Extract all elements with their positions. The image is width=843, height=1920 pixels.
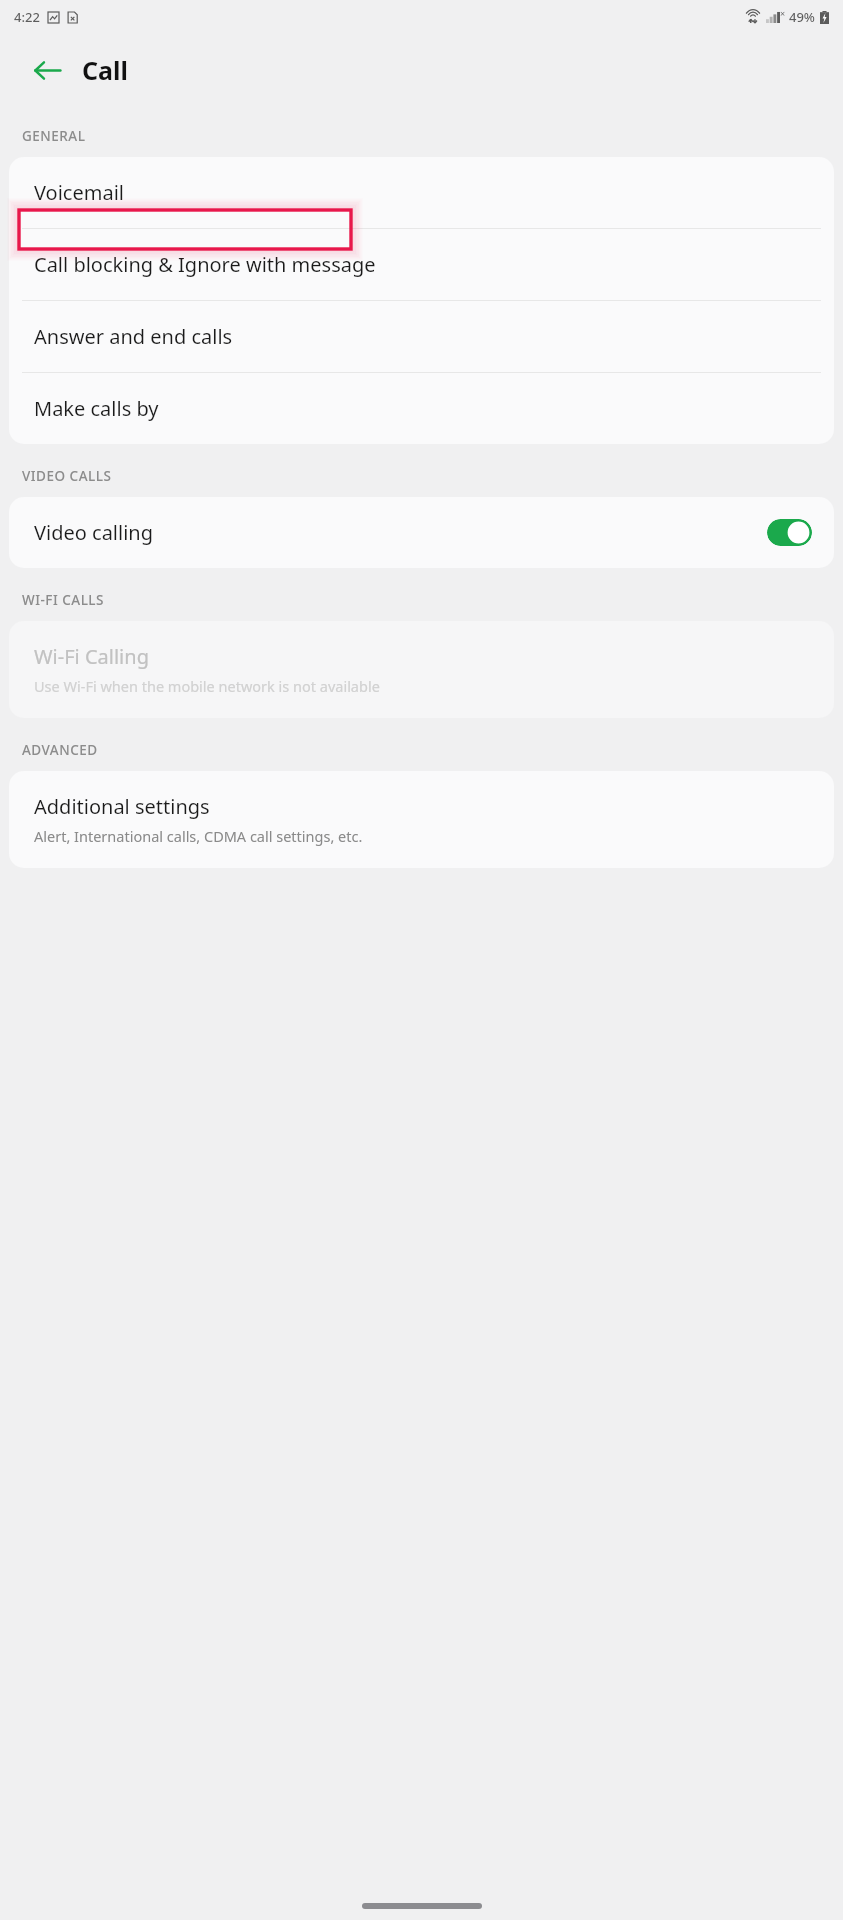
button[interactable]: Back xyxy=(18,41,76,99)
button[interactable]: Make calls by xyxy=(9,373,834,444)
staticText: Call blocking & Ignore with message xyxy=(34,251,376,278)
staticText: Additional settings xyxy=(34,793,210,820)
staticText: Voicemail xyxy=(34,179,124,206)
button[interactable]: Additional settings xyxy=(9,771,834,868)
staticText: Video calling xyxy=(34,519,153,546)
button[interactable]: Call blocking & Ignore with message xyxy=(9,229,834,300)
staticText: Use Wi-Fi when the mobile network is not… xyxy=(34,676,380,696)
staticText: × xyxy=(780,7,786,19)
staticText: VIDEO CALLS xyxy=(22,467,112,485)
button[interactable]: Video calling toggle xyxy=(767,519,812,546)
staticText: Alert, International calls, CDMA call se… xyxy=(34,826,363,846)
button[interactable]: Answer and end calls xyxy=(9,301,834,372)
staticText: WI-FI CALLS xyxy=(22,591,104,609)
staticText: Answer and end calls xyxy=(34,323,233,350)
staticText: GENERAL xyxy=(22,127,86,145)
button[interactable]: Voicemail xyxy=(9,157,834,228)
staticText: ADVANCED xyxy=(22,741,98,759)
staticText: 4:22 xyxy=(14,8,40,26)
staticText: Call xyxy=(82,53,128,87)
button[interactable]: Wi-Fi Calling xyxy=(9,621,834,718)
staticText: 49% xyxy=(789,8,815,26)
button[interactable]: Video calling xyxy=(9,497,834,568)
staticText: Wi-Fi Calling xyxy=(34,643,149,670)
staticText: Make calls by xyxy=(34,395,159,422)
